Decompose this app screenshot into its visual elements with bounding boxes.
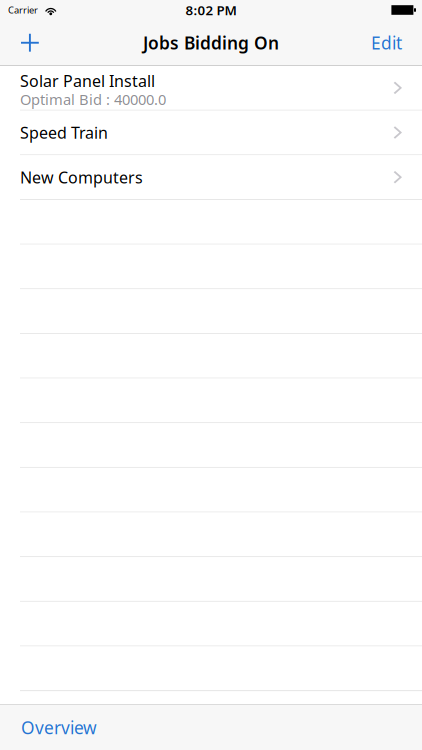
- staticText: Carrier: [8, 4, 38, 16]
- staticText: Speed Train: [20, 122, 108, 143]
- button[interactable]: Add: [10, 21, 50, 65]
- staticText: Optimal Bid : 40000.0: [20, 89, 166, 109]
- staticText: 8:02 PM: [185, 1, 236, 19]
- button[interactable]: Overview: [0, 705, 118, 750]
- button[interactable]: Edit: [361, 21, 412, 65]
- staticText: Jobs Bidding On: [143, 31, 279, 54]
- button[interactable]: Speed Train: [0, 111, 422, 155]
- staticText: Solar Panel Install: [20, 70, 155, 91]
- button[interactable]: New Computers: [0, 155, 422, 200]
- staticText: Overview: [21, 716, 97, 739]
- staticText: New Computers: [20, 167, 143, 188]
- staticText: Edit: [371, 31, 402, 54]
- button[interactable]: Solar Panel Install: [0, 66, 422, 111]
